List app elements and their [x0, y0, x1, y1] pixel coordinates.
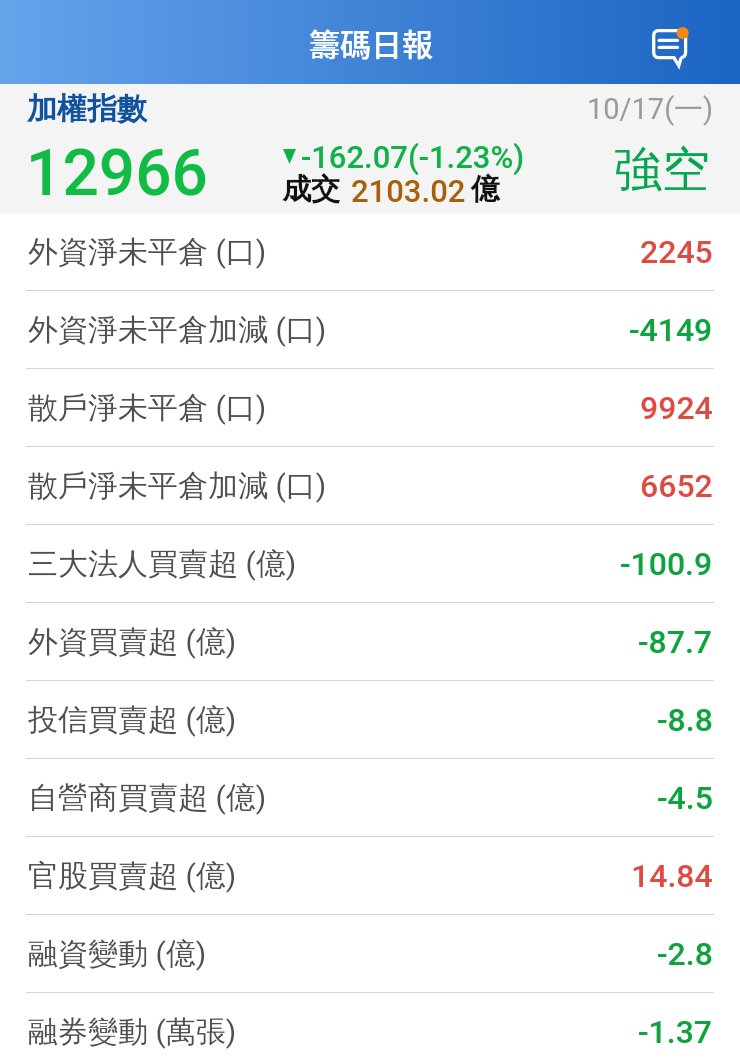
staticText: 外資買賣超 (億) [28, 623, 237, 661]
button[interactable]: 自營商買賣超 (億) [0, 759, 740, 837]
staticText: -162.07(-1.23%) [301, 139, 525, 175]
button[interactable]: Messages [644, 21, 698, 75]
button[interactable]: 外資淨未平倉 (口) [0, 213, 740, 291]
button[interactable]: 融資變動 (億) [0, 915, 740, 993]
staticText: 成交 [282, 171, 340, 208]
button[interactable]: 外資買賣超 (億) [0, 603, 740, 681]
staticText: 2245 [640, 233, 713, 271]
staticText: 外資淨未平倉加減 (口) [28, 311, 327, 349]
staticText: 自營商買賣超 (億) [28, 779, 267, 817]
staticText: -4.5 [657, 779, 713, 817]
button[interactable]: 散戶淨未平倉 (口) [0, 369, 740, 447]
button[interactable]: 融券變動 (萬張) [0, 993, 740, 1060]
staticText: 三大法人買賣超 (億) [28, 545, 297, 583]
staticText: 2103.02 [351, 173, 466, 209]
staticText: -2.8 [657, 935, 713, 973]
staticText: 10/17(一) [587, 91, 714, 128]
button[interactable]: 外資淨未平倉加減 (口) [0, 291, 740, 369]
staticText: 強空 [614, 140, 710, 200]
button[interactable]: 三大法人買賣超 (億) [0, 525, 740, 603]
staticText: 億 [471, 171, 500, 208]
staticText: -1.37 [638, 1013, 713, 1051]
staticText: 外資淨未平倉 (口) [28, 233, 267, 271]
button[interactable]: 投信買賣超 (億) [0, 681, 740, 759]
staticText: 9924 [640, 389, 713, 427]
staticText: 散戶淨未平倉 (口) [28, 389, 267, 427]
button[interactable]: 散戶淨未平倉加減 (口) [0, 447, 740, 525]
staticText: 12966 [26, 136, 208, 211]
staticText: 散戶淨未平倉加減 (口) [28, 467, 327, 505]
staticText: 加權指數 [27, 90, 147, 128]
staticText: -4149 [629, 311, 713, 349]
staticText: 籌碼日報 [309, 20, 433, 65]
staticText: -87.7 [638, 623, 713, 661]
staticText: -8.8 [657, 701, 713, 739]
staticText: 融券變動 (萬張) [28, 1013, 237, 1051]
staticText: 投信買賣超 (億) [28, 701, 237, 739]
staticText: 14.84 [631, 857, 713, 895]
staticText: 6652 [640, 467, 713, 505]
staticText: -100.9 [620, 545, 713, 583]
staticText: 官股買賣超 (億) [28, 857, 237, 895]
button[interactable]: 官股買賣超 (億) [0, 837, 740, 915]
staticText: 融資變動 (億) [28, 935, 207, 973]
